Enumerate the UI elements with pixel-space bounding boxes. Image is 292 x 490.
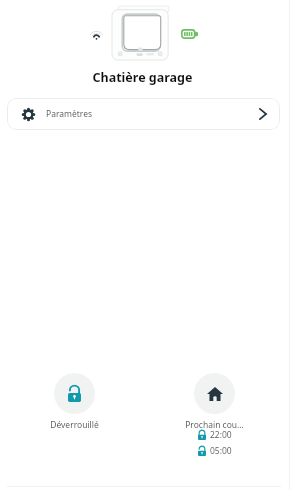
other: Signal Wi-Fi xyxy=(90,31,103,39)
staticText: Chatière garage xyxy=(0,69,285,86)
button[interactable]: Paramètres xyxy=(7,98,280,130)
button[interactable]: Déverrouillé xyxy=(14,373,135,431)
staticText: Déverrouillé xyxy=(50,419,99,431)
button[interactable]: Prochain cou… xyxy=(154,373,275,431)
staticText: Prochain cou… xyxy=(185,419,244,431)
other: Batterie xyxy=(181,29,198,39)
staticText: 22:00 xyxy=(210,429,232,441)
staticText: Paramètres xyxy=(46,108,93,120)
staticText: 05:00 xyxy=(210,445,232,457)
